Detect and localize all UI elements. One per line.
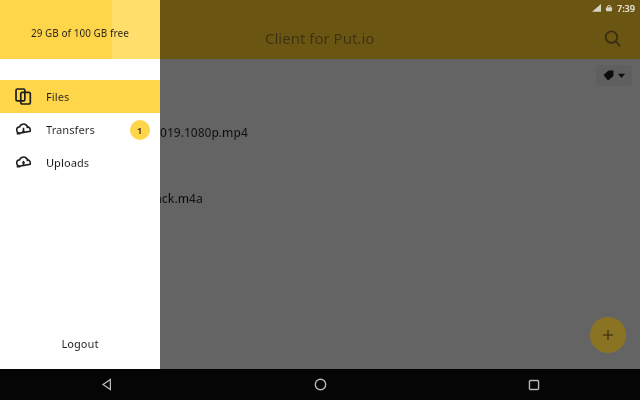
button[interactable]: Search [594,20,630,56]
staticText: Files [46,89,70,104]
button[interactable]: Recents [427,369,640,400]
button[interactable]: Logout [0,321,160,365]
staticText: 29 GB of 100 GB free [31,26,129,40]
button[interactable]: Filter [596,65,632,86]
staticText: Logout [61,336,99,351]
button[interactable]: Transfers [0,113,160,146]
staticText: 7:39 [617,2,635,14]
button[interactable]: Some.Video.File.2019.1080p.mp4 [0,99,640,165]
button[interactable]: Home [214,369,427,400]
staticText: 1 [137,124,143,136]
button[interactable]: Uploads [0,146,160,179]
button[interactable]: Add [590,317,626,353]
staticText: Client for Put.io [265,28,375,48]
staticText: Some.Video.File.2019.1080p.mp4 [60,124,248,140]
staticText: Uploads [46,155,90,170]
button[interactable]: Back [0,369,214,400]
staticText: Transfers [46,122,95,137]
staticText: Another.Audio.Track.m4a [60,190,203,206]
button[interactable]: Files [0,80,160,113]
button[interactable]: Another.Audio.Track.m4a [0,165,640,231]
